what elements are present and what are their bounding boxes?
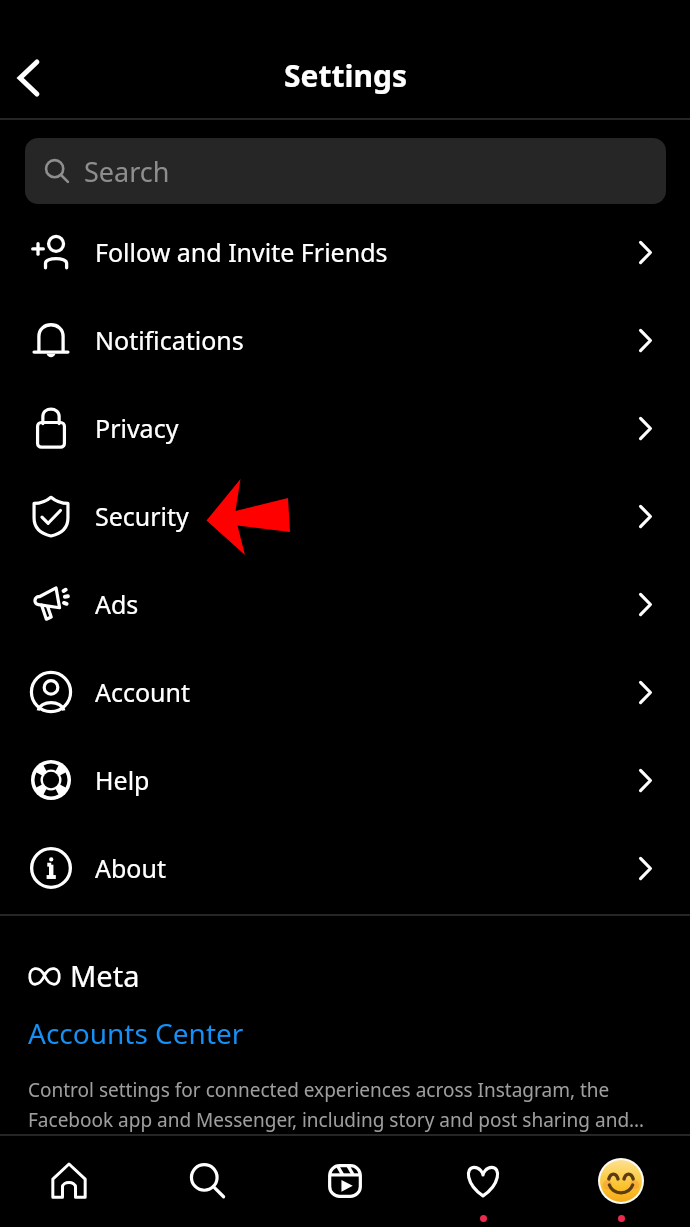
button[interactable]: Privacy xyxy=(0,384,690,472)
button[interactable]: About xyxy=(0,824,690,912)
button[interactable]: Search xyxy=(25,138,666,204)
staticText: Follow and Invite Friends xyxy=(95,235,388,269)
button[interactable]: Profile xyxy=(552,1136,690,1227)
button[interactable]: Help xyxy=(0,736,690,824)
button[interactable]: Notifications xyxy=(414,1136,552,1227)
staticText: Ads xyxy=(95,587,139,621)
staticText: Privacy xyxy=(95,411,179,445)
staticText: About xyxy=(95,851,166,885)
button[interactable]: Reels xyxy=(276,1136,414,1227)
button[interactable]: Ads xyxy=(0,560,690,648)
button[interactable]: Follow and Invite Friends xyxy=(0,208,690,296)
button[interactable]: Home xyxy=(0,1136,138,1227)
staticText: Account xyxy=(95,675,191,709)
staticText: Control settings for connected experienc… xyxy=(28,1077,662,1132)
button[interactable]: Security xyxy=(0,472,690,560)
button[interactable]: Back xyxy=(0,50,56,106)
staticText: Meta xyxy=(70,956,140,995)
staticText: Security xyxy=(95,499,189,533)
staticText: Notifications xyxy=(95,323,244,357)
button[interactable]: Account xyxy=(0,648,690,736)
staticText: Settings xyxy=(284,55,407,96)
staticText: Help xyxy=(95,763,150,797)
staticText: Accounts Center xyxy=(28,1014,244,1052)
button[interactable]: Search xyxy=(138,1136,276,1227)
button[interactable]: Accounts Center xyxy=(28,1014,244,1052)
button[interactable]: Notifications xyxy=(0,296,690,384)
staticText: Search xyxy=(84,153,170,190)
